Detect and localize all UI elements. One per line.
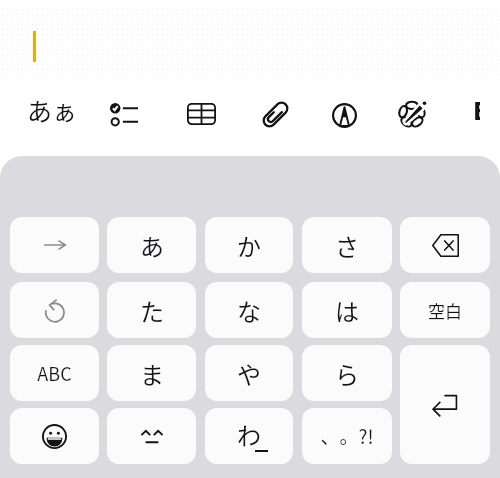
staticText: は <box>335 293 359 328</box>
button[interactable]: Backspace <box>400 217 490 273</box>
staticText: 空白 <box>428 298 462 323</box>
button[interactable]: Checklist <box>101 92 147 138</box>
staticText: あ <box>140 228 164 263</box>
staticText: か <box>237 228 261 263</box>
button[interactable]: Undo <box>10 282 99 338</box>
button[interactable]: た <box>107 282 196 338</box>
button[interactable]: ABC <box>10 345 99 401</box>
button[interactable]: AI assist <box>389 91 435 137</box>
staticText: さ <box>335 228 359 263</box>
button[interactable]: は <box>302 282 392 338</box>
button[interactable]: Draw <box>321 92 367 138</box>
button[interactable]: 、。?! <box>302 408 392 464</box>
button[interactable]: さ <box>302 217 392 273</box>
button[interactable]: あぁ <box>23 87 81 132</box>
button[interactable]: Kaomoji <box>107 408 196 464</box>
button[interactable]: や <box>205 345 293 401</box>
button[interactable]: 空白 <box>400 282 490 338</box>
staticText: あぁ <box>27 92 78 128</box>
staticText: 、。?! <box>320 422 374 450</box>
button[interactable]: な <box>205 282 293 338</box>
button[interactable]: wa <box>205 408 293 464</box>
staticText: な <box>237 293 261 328</box>
button[interactable]: Emoji <box>10 408 99 464</box>
staticText: B <box>473 92 480 127</box>
button[interactable]: Bold <box>458 79 480 140</box>
staticText: や <box>237 356 261 391</box>
button[interactable]: Move cursor right <box>10 217 99 273</box>
staticText: わ <box>237 417 261 452</box>
button[interactable]: Enter <box>400 345 490 464</box>
staticText: ABC <box>37 360 72 386</box>
button[interactable]: か <box>205 217 293 273</box>
button[interactable]: あ <box>107 217 196 273</box>
button[interactable]: Insert table <box>178 91 224 137</box>
button[interactable]: Attach file <box>252 91 298 137</box>
staticText: た <box>140 293 164 328</box>
staticText: ま <box>140 356 164 391</box>
staticText: ら <box>335 356 359 391</box>
button[interactable]: ら <box>302 345 392 401</box>
button[interactable]: ま <box>107 345 196 401</box>
